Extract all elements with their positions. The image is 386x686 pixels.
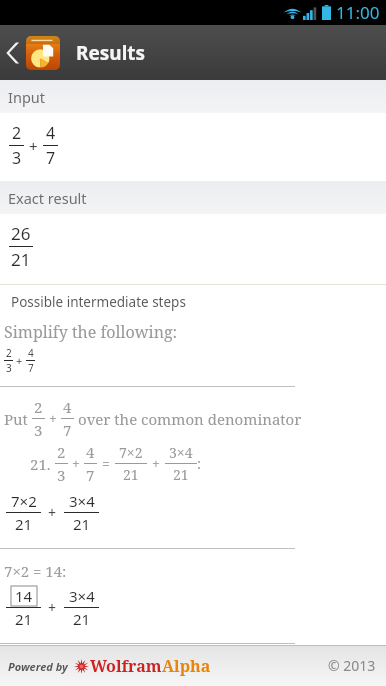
staticText: 4 bbox=[28, 346, 34, 360]
staticText: = bbox=[102, 454, 110, 473]
staticText: 21. bbox=[30, 454, 51, 474]
staticText: Input bbox=[8, 87, 45, 107]
staticText: 3×4 bbox=[69, 491, 95, 511]
staticText: 2 bbox=[34, 397, 43, 417]
staticText: Exact result bbox=[8, 188, 87, 208]
staticText: 2 bbox=[6, 346, 12, 360]
staticText: 14 bbox=[15, 586, 33, 606]
staticText: 7×2 = 14: bbox=[4, 561, 67, 581]
button[interactable]: Navigate up bbox=[0, 30, 62, 76]
staticText: 26 bbox=[11, 222, 31, 245]
staticText: 4 bbox=[63, 397, 72, 417]
staticText: + bbox=[49, 409, 57, 428]
staticText: 3 bbox=[34, 420, 43, 440]
button[interactable]: Possible intermediate steps bbox=[11, 293, 186, 311]
button[interactable]: Input bbox=[0, 80, 386, 113]
staticText: 4 bbox=[86, 442, 95, 462]
staticText: : bbox=[197, 454, 202, 473]
staticText: over the common denominator bbox=[78, 409, 302, 429]
staticText: + bbox=[16, 353, 23, 368]
other: Battery bbox=[322, 5, 331, 20]
staticText: 2 bbox=[12, 122, 22, 144]
staticText: 7 bbox=[86, 465, 95, 485]
staticText: Wolfram bbox=[90, 655, 162, 677]
staticText: Alpha bbox=[162, 655, 211, 677]
staticText: 7 bbox=[28, 361, 34, 375]
staticText: + bbox=[29, 136, 38, 156]
staticText: 3×4 bbox=[169, 443, 193, 462]
staticText: 21 bbox=[15, 514, 33, 534]
staticText: 21 bbox=[11, 248, 31, 271]
staticText: Powered by bbox=[8, 659, 68, 674]
staticText: 7 bbox=[63, 420, 72, 440]
staticText: 7×2 bbox=[119, 443, 143, 462]
staticText: + bbox=[48, 598, 57, 617]
staticText: Simplify the following: bbox=[4, 321, 178, 343]
staticText: 3 bbox=[12, 147, 22, 169]
other: Wi-Fi bbox=[284, 6, 301, 20]
staticText: 21 bbox=[123, 465, 139, 484]
staticText: + bbox=[72, 454, 80, 473]
staticText: © 2013 bbox=[328, 656, 376, 675]
button[interactable]: Exact result bbox=[0, 181, 386, 214]
staticText: + bbox=[152, 454, 160, 473]
staticText: 7×2 bbox=[11, 491, 37, 511]
staticText: + bbox=[48, 503, 57, 522]
staticText: 4 bbox=[46, 122, 56, 144]
staticText: 21 bbox=[15, 609, 33, 629]
staticText: 2 bbox=[57, 442, 66, 462]
staticText: 21 bbox=[73, 609, 91, 629]
button[interactable]: Powered by bbox=[8, 655, 211, 677]
staticText: 3 bbox=[57, 465, 66, 485]
staticText: 11:00 bbox=[336, 1, 380, 24]
staticText: 21 bbox=[173, 465, 189, 484]
staticText: 3 bbox=[6, 361, 12, 375]
staticText: 21 bbox=[73, 514, 91, 534]
staticText: Put bbox=[4, 409, 28, 429]
staticText: 3×4 bbox=[69, 586, 95, 606]
staticText: 7 bbox=[46, 147, 56, 169]
other: Signal bbox=[303, 6, 318, 20]
staticText: Results bbox=[76, 40, 146, 66]
